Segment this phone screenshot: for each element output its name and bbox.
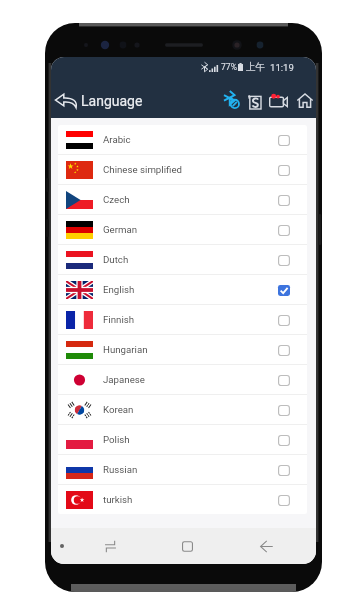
button[interactable]: Japanese [58, 365, 307, 394]
staticText: Japanese [103, 374, 145, 385]
staticText: English [103, 284, 135, 295]
button[interactable]: Czech [58, 185, 307, 214]
button[interactable]: Back [52, 90, 80, 111]
staticText: turkish [103, 494, 133, 505]
button[interactable]: Dutch [58, 245, 307, 274]
button[interactable]: Record video [267, 92, 290, 109]
button[interactable]: German [58, 215, 307, 244]
button[interactable]: Home [295, 91, 315, 110]
button[interactable]: English [58, 275, 307, 304]
button[interactable]: Finnish [58, 305, 307, 334]
button[interactable]: Polish [58, 425, 307, 454]
button[interactable]: Smart capture [247, 93, 262, 110]
staticText: 11:19 [270, 62, 294, 73]
staticText: Polish [103, 434, 130, 445]
button[interactable]: Assistant [52, 528, 72, 564]
staticText: Hungarian [103, 344, 148, 355]
button[interactable]: Hungarian [58, 335, 307, 364]
staticText: 77% [221, 62, 237, 72]
button[interactable]: turkish [58, 485, 307, 514]
staticText: Arabic [103, 134, 131, 145]
button[interactable]: Arabic [58, 125, 307, 154]
button[interactable]: Korean [58, 395, 307, 424]
staticText: Language [81, 93, 143, 109]
staticText: Russian [103, 464, 138, 475]
button[interactable]: Bluetooth off [222, 89, 241, 110]
button[interactable]: Recents [95, 528, 125, 564]
button[interactable]: Russian [58, 455, 307, 484]
staticText: Korean [103, 404, 134, 415]
staticText: German [103, 224, 138, 235]
button[interactable]: Back [251, 528, 281, 564]
staticText: Czech [103, 194, 130, 205]
staticText: Finnish [103, 314, 135, 325]
staticText: Chinese simplified [103, 164, 182, 175]
staticText: 上午 [246, 61, 266, 73]
button[interactable]: Chinese simplified [58, 155, 307, 184]
button[interactable]: Home [172, 528, 202, 564]
staticText: Dutch [103, 254, 129, 265]
